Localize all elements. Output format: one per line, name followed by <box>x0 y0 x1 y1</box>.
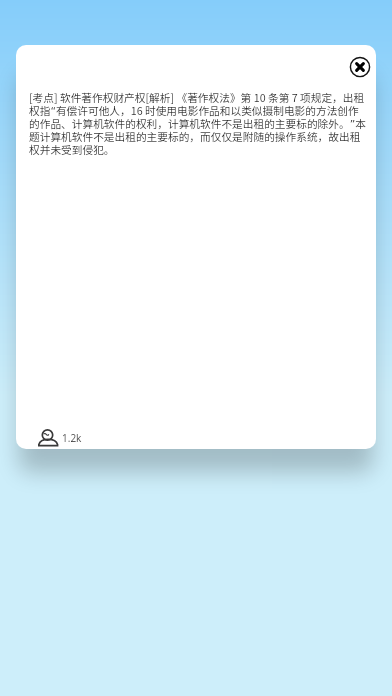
button[interactable]: 1.2k <box>38 427 82 447</box>
staticText: [考点] 软件著作权财产权[解析] 《著作权法》第 10 条第 7 项规定，出租… <box>29 91 376 156</box>
button[interactable]: Close <box>340 47 376 87</box>
staticText: 1.2k <box>62 431 82 445</box>
